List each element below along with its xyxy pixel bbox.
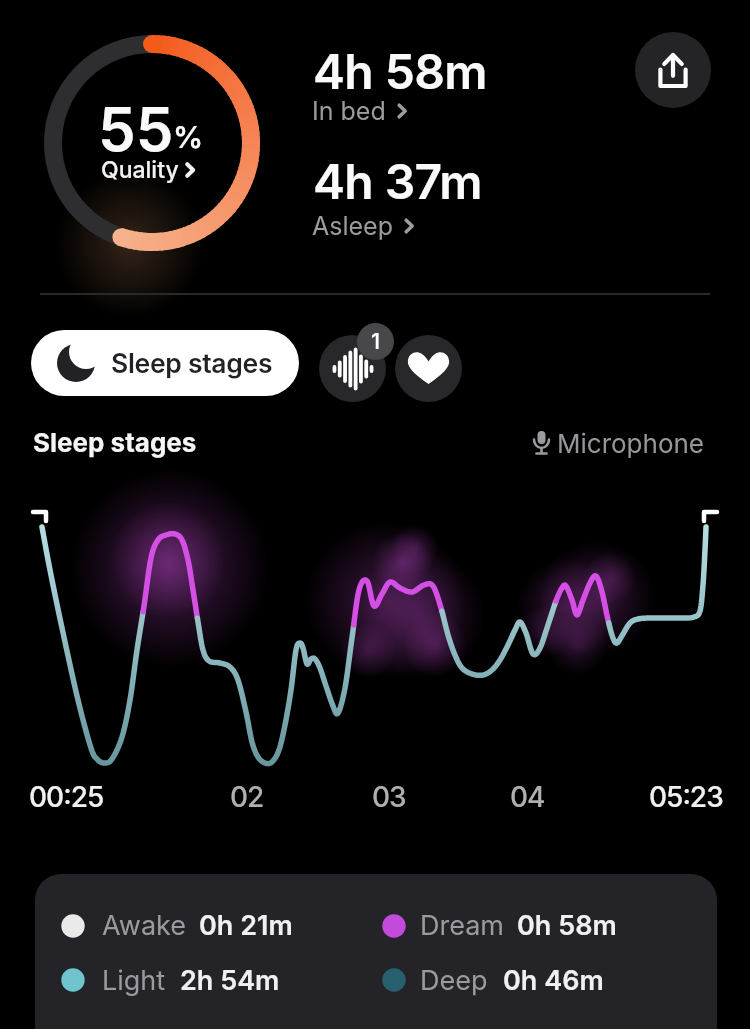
staticText: 03 xyxy=(372,780,406,814)
staticText: Dream xyxy=(420,909,505,942)
button[interactable] xyxy=(395,335,462,402)
staticText: 55 xyxy=(98,93,174,166)
staticText: 2h 54m xyxy=(180,964,280,997)
staticText: 4h 37m xyxy=(313,152,482,210)
staticText: 04 xyxy=(510,780,545,814)
staticText: Quality xyxy=(101,156,179,184)
staticText: % xyxy=(173,119,204,155)
staticText: Asleep xyxy=(312,211,393,241)
button[interactable]: Microphone xyxy=(533,428,704,459)
staticText: Sleep stages xyxy=(111,347,273,379)
staticText: Light xyxy=(102,964,166,997)
staticText: 4h 58m xyxy=(313,42,487,100)
staticText: 0h 21m xyxy=(199,909,293,942)
staticText: Deep xyxy=(420,964,488,997)
staticText: 0h 46m xyxy=(503,964,604,997)
button[interactable]: 55 xyxy=(52,43,252,243)
button[interactable]: Asleep xyxy=(312,211,414,241)
staticText: Awake xyxy=(102,909,187,942)
staticText: 02 xyxy=(230,780,264,814)
button[interactable]: In bed xyxy=(312,96,407,126)
staticText: Sleep stages xyxy=(33,427,197,458)
staticText: 1 xyxy=(371,328,381,355)
staticText: In bed xyxy=(312,96,386,126)
staticText: Microphone xyxy=(557,428,704,459)
button[interactable]: Sleep stages xyxy=(31,330,299,396)
staticText: 05:23 xyxy=(649,780,723,814)
staticText: 00:25 xyxy=(29,780,104,814)
staticText: 0h 58m xyxy=(517,909,617,942)
button[interactable] xyxy=(319,335,386,402)
button[interactable] xyxy=(635,32,711,108)
